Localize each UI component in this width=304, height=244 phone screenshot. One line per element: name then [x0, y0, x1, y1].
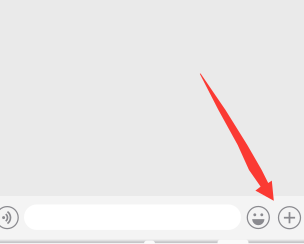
- button[interactable]: Audio message: [0, 207, 18, 229]
- button[interactable]: Emoji and stickers: [247, 206, 269, 228]
- button[interactable]: More apps: [278, 207, 300, 229]
